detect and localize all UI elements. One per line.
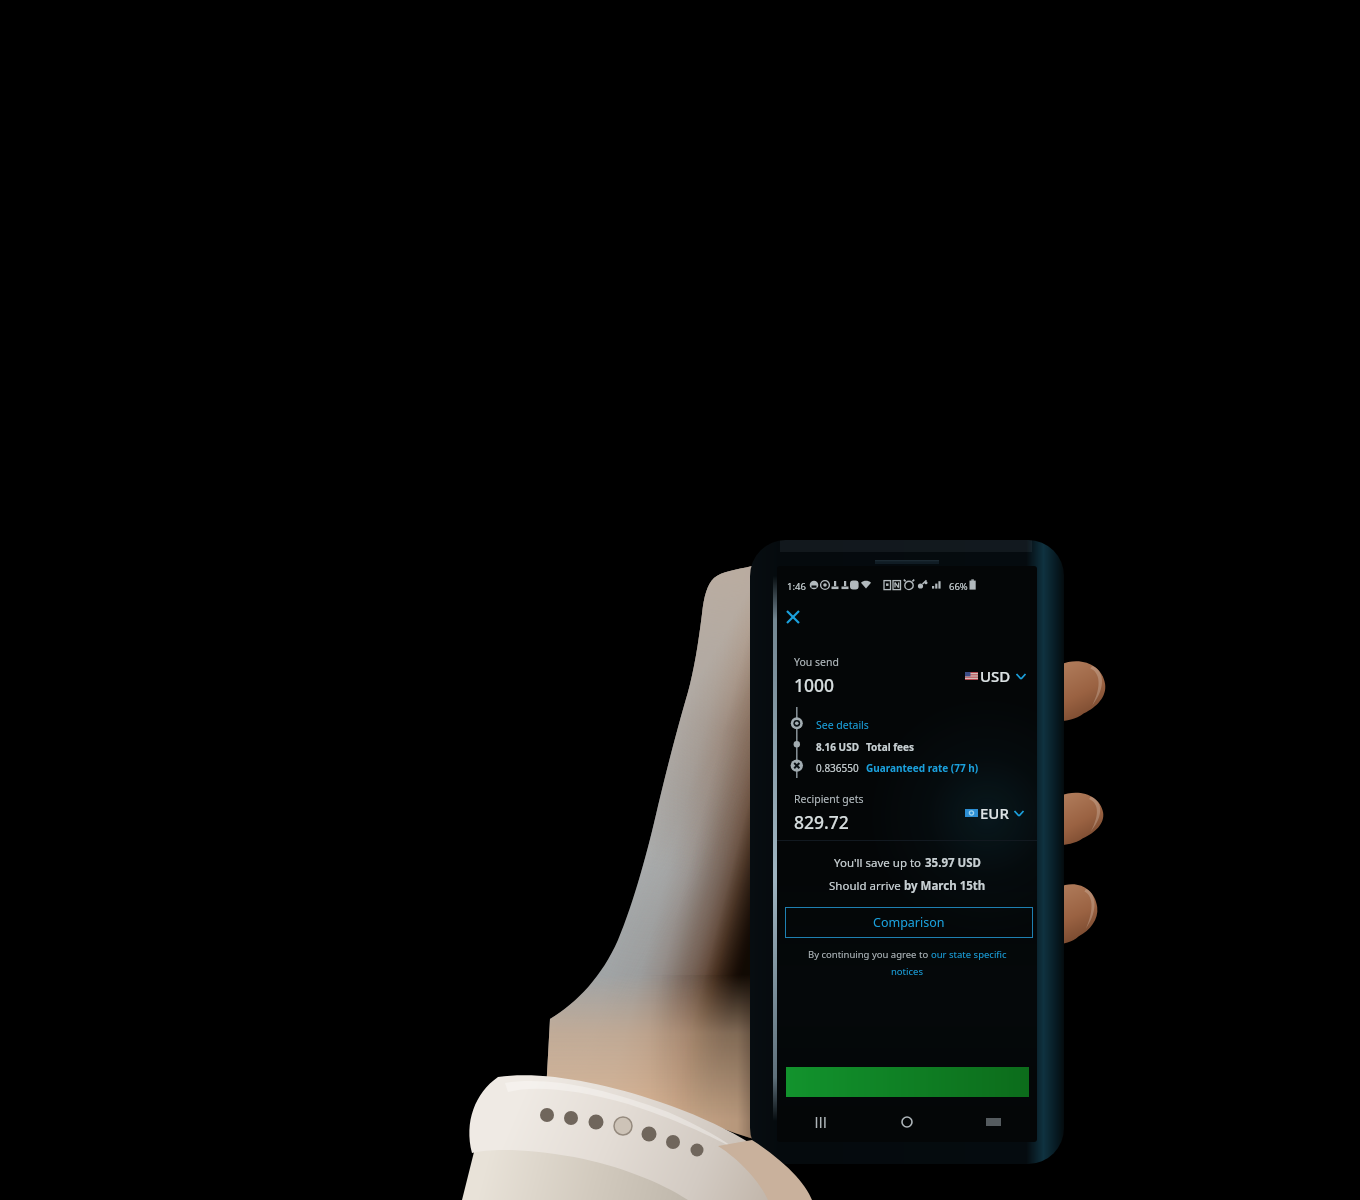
button[interactable]: notices [891,965,923,978]
button[interactable]: See details [816,718,869,732]
staticText: By continuing you agree to [808,948,931,961]
button[interactable]: Continue [786,1067,1029,1097]
staticText: Recipient gets [794,792,864,806]
button[interactable]: Home [863,1110,950,1134]
staticText: Comparison [873,914,945,931]
button[interactable]: our state specific [931,948,1007,961]
staticText: You'll save up to [834,855,925,871]
button[interactable]: Comparison [785,907,1033,938]
staticText: 66% [949,580,968,593]
staticText: 8.16 USD [816,740,859,754]
staticText: EUR [980,803,1009,823]
button[interactable]: Choose currency EUR [962,800,1027,826]
staticText: 829.72 [794,810,849,834]
staticText: Total fees [866,740,915,754]
button[interactable]: Close [780,604,806,630]
staticText: 1000 [794,673,835,697]
staticText: Should arrive [829,878,904,894]
staticText: You send [794,655,839,669]
button[interactable]: Recents [777,1110,863,1134]
button[interactable]: Back [950,1110,1037,1134]
button[interactable]: Choose currency USD [962,663,1029,689]
staticText: 0.836550 [816,761,859,775]
staticText: by March 15th [904,878,986,894]
staticText: 1:46 [787,580,806,593]
staticText: Guaranteed rate (77 h) [866,761,979,775]
staticText: USD [980,666,1011,686]
staticText: 35.97 USD [925,855,981,871]
